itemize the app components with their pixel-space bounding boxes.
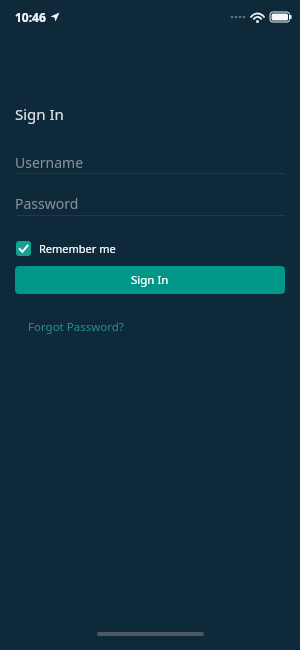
button[interactable]: Sign In [15, 266, 285, 294]
staticText: Sign In [15, 104, 64, 124]
staticText: Remember me [39, 241, 116, 256]
staticText: Username [15, 153, 84, 172]
button[interactable]: Remember me [16, 241, 116, 256]
staticText: Sign In [131, 272, 169, 288]
staticText: Password [15, 194, 79, 213]
button[interactable]: Password [15, 194, 285, 213]
button[interactable]: Username [15, 153, 285, 172]
button[interactable]: Forgot Password? [28, 319, 124, 335]
staticText: 10:46 [15, 9, 46, 25]
